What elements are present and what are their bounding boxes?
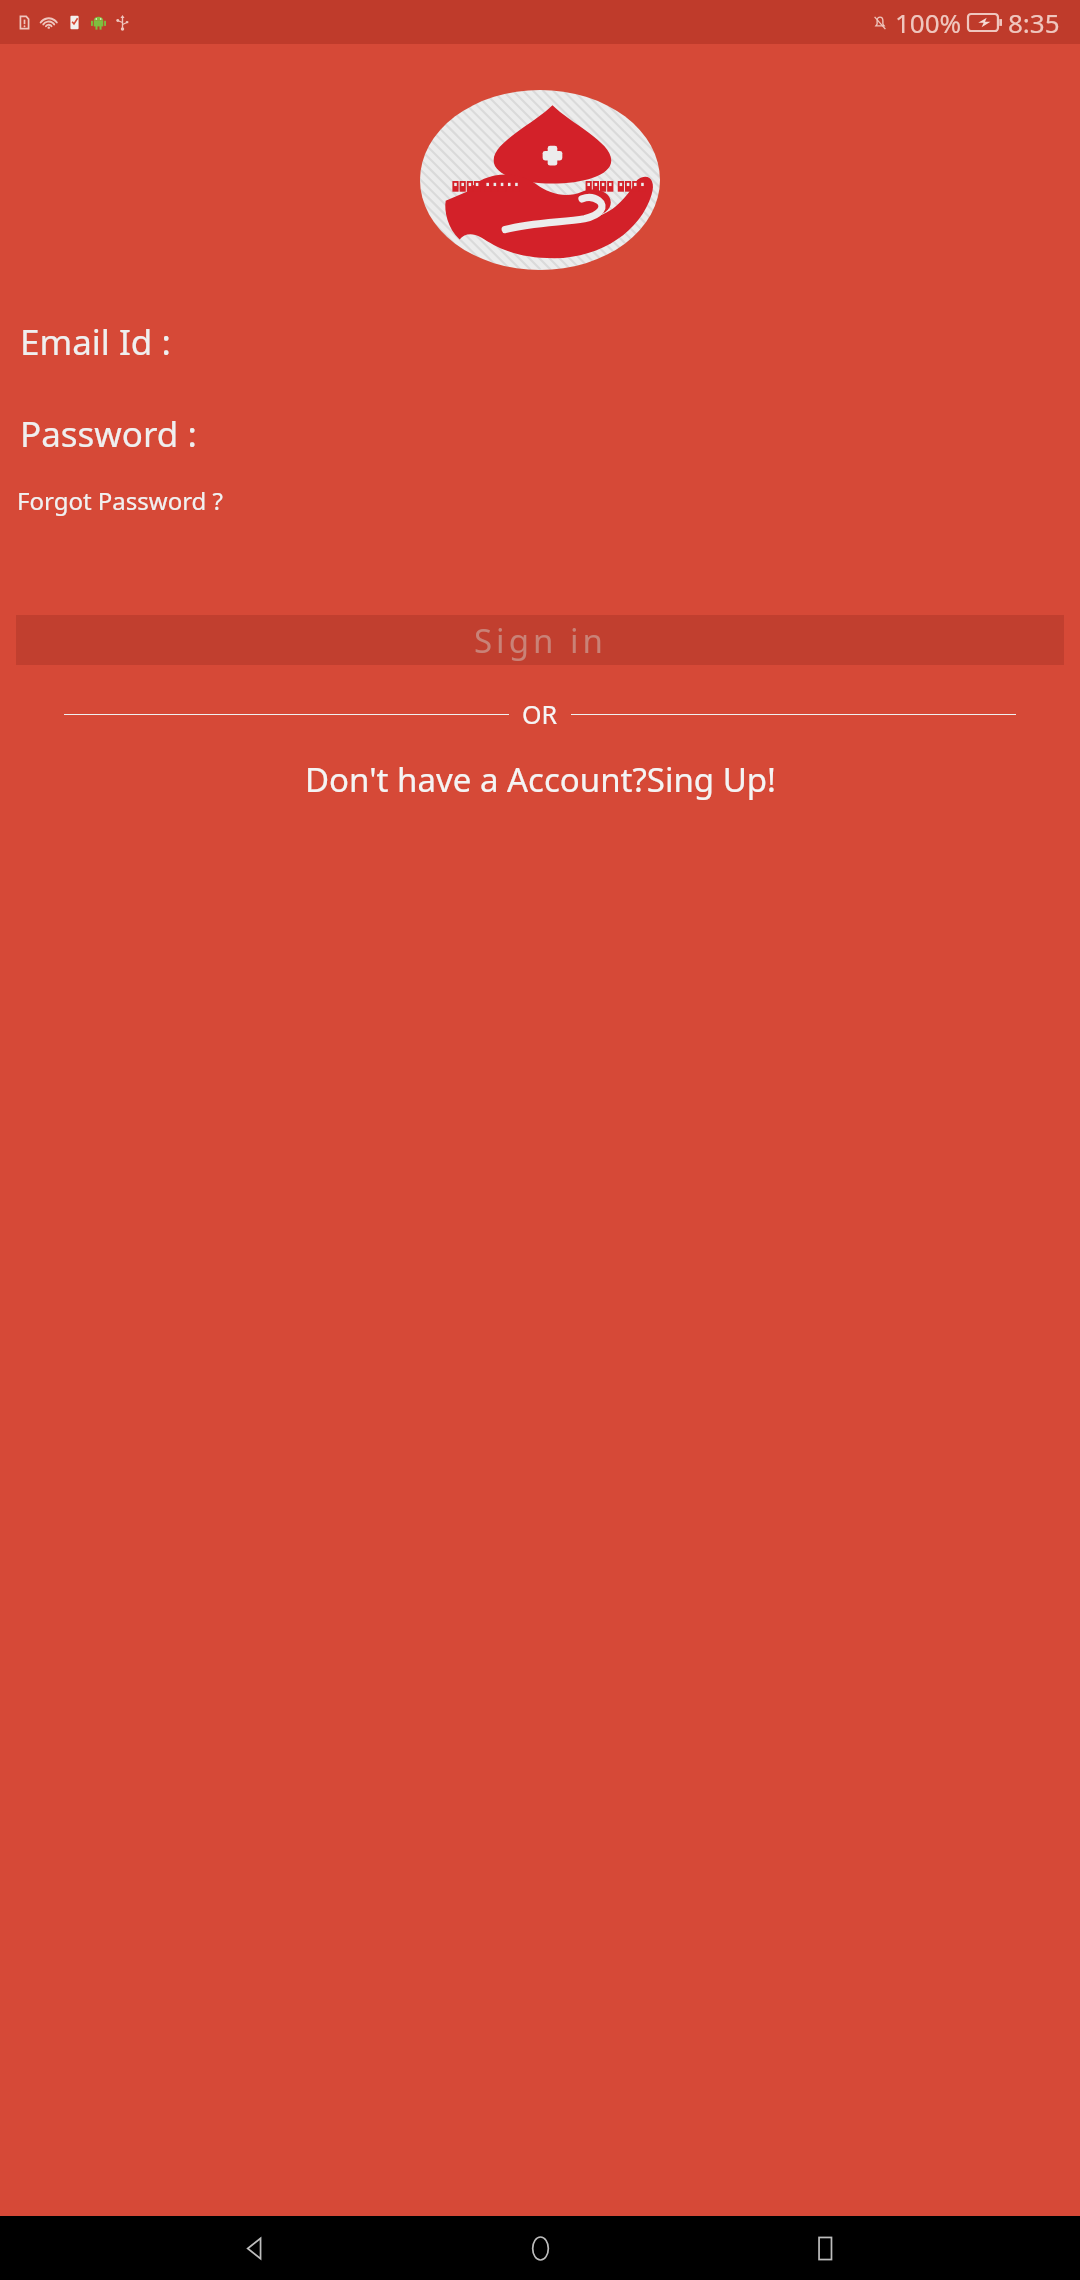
button[interactable]: Forgot Password ? bbox=[12, 480, 229, 521]
staticText: Sign in bbox=[474, 618, 607, 663]
staticText: Password : bbox=[20, 410, 197, 458]
button[interactable]: Home bbox=[510, 2218, 570, 2278]
button[interactable]: Don't have a Account?Sing Up! bbox=[299, 753, 782, 806]
button[interactable]: Email Id : bbox=[20, 318, 1060, 370]
button[interactable]: Back bbox=[225, 2218, 285, 2278]
staticText: 8:35 bbox=[1008, 5, 1060, 40]
staticText: Forgot Password ? bbox=[17, 484, 224, 517]
staticText: Don't have a Account?Sing Up! bbox=[305, 757, 776, 802]
staticText: Email Id : bbox=[20, 318, 171, 366]
button[interactable]: Sign in bbox=[16, 615, 1064, 665]
staticText: OR bbox=[522, 697, 558, 731]
button[interactable]: Password : bbox=[20, 410, 1060, 462]
button[interactable]: Recent apps bbox=[795, 2218, 855, 2278]
staticText: 100% bbox=[895, 5, 962, 40]
